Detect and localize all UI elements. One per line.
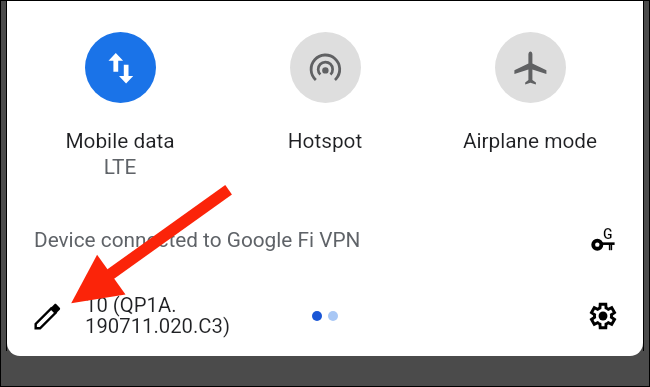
button[interactable]: Device connected to Google Fi VPN (28, 225, 373, 255)
staticText: Airplane mode (445, 129, 615, 153)
staticText: Mobile data (35, 129, 205, 153)
button[interactable]: Mobile data (35, 12, 205, 192)
staticText: G (603, 226, 613, 242)
button[interactable]: Settings (585, 298, 621, 334)
button[interactable]: Edit (29, 298, 65, 334)
staticText: LTE (35, 155, 205, 179)
staticText: Device connected to Google Fi VPN (34, 228, 361, 252)
button[interactable]: Google VPN (582, 222, 622, 262)
button[interactable]: Airplane mode (445, 12, 615, 192)
button[interactable]: Hotspot (240, 12, 410, 192)
staticText: 10 (QP1A. 190711.020.C3) (85, 293, 231, 338)
staticText: Hotspot (240, 129, 410, 153)
